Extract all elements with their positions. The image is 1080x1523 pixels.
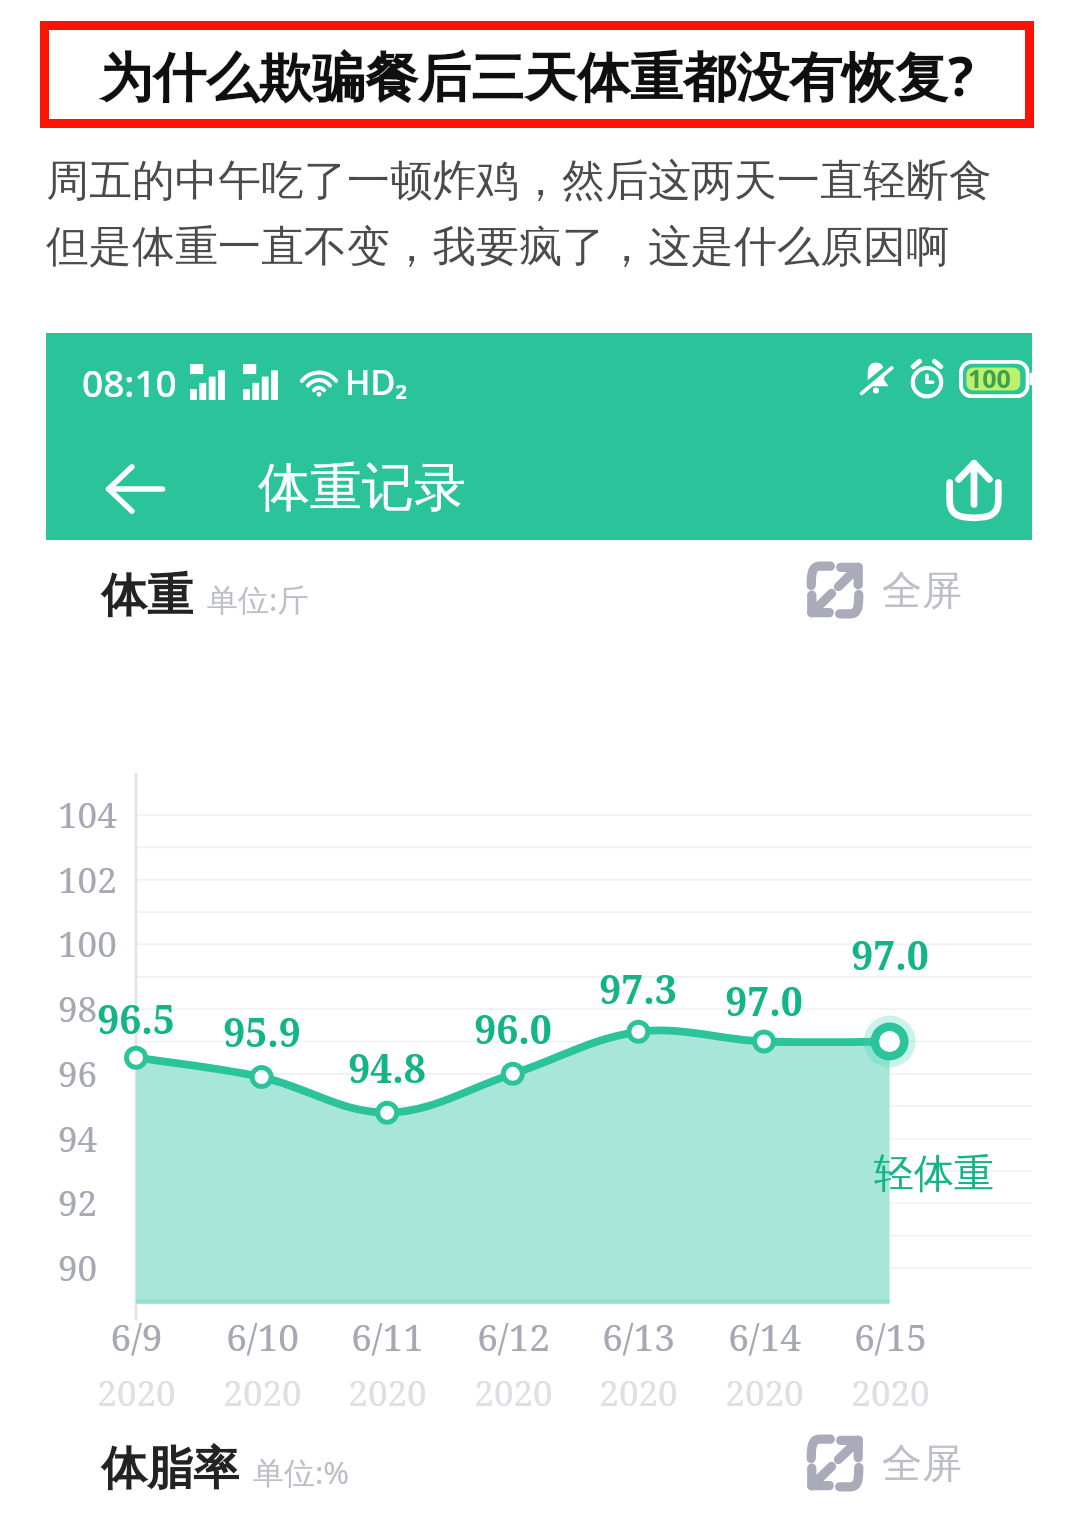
staticText: 100 <box>968 361 1011 395</box>
staticText: 96.0 <box>474 1002 552 1055</box>
staticText: 97.0 <box>851 928 929 981</box>
other: Fullscreen <box>806 561 864 619</box>
staticText: HD₂ <box>345 359 408 405</box>
staticText: 周五的中午吃了一顿炸鸡，然后这两天一直轻断食 <box>46 154 992 208</box>
staticText: 为什么欺骗餐后三天体重都没有恢复? <box>100 39 974 111</box>
staticText: 6/13 <box>602 1311 675 1361</box>
staticText: 6/9 <box>110 1311 163 1361</box>
staticText: 2020 <box>474 1369 553 1417</box>
staticText: 96.5 <box>97 992 175 1045</box>
other: Fullscreen <box>806 1434 864 1492</box>
staticText: 体脂率 <box>101 1440 239 1498</box>
staticText: 96 <box>58 1050 98 1098</box>
staticText: 2020 <box>97 1369 176 1417</box>
staticText: 单位:斤 <box>207 578 309 620</box>
staticText: 95.9 <box>223 1005 301 1058</box>
staticText: 体重 <box>101 567 193 625</box>
staticText: 2020 <box>348 1369 427 1417</box>
button[interactable]: Fullscreen <box>806 1434 962 1492</box>
staticText: 92 <box>58 1179 98 1227</box>
staticText: 98 <box>58 985 98 1033</box>
staticText: 6/15 <box>854 1311 927 1361</box>
button[interactable]: Share <box>932 447 1016 531</box>
staticText: 体重记录 <box>258 455 466 521</box>
staticText: 94.8 <box>348 1041 426 1094</box>
staticText: 6/12 <box>477 1311 550 1361</box>
staticText: 08:10 <box>82 357 177 407</box>
staticText: 90 <box>58 1244 98 1292</box>
staticText: 6/11 <box>351 1311 424 1361</box>
button[interactable]: Fullscreen <box>806 561 962 619</box>
other: Silent <box>858 359 894 399</box>
staticText: 94 <box>58 1115 98 1163</box>
staticText: 2020 <box>851 1369 930 1417</box>
staticText: 2020 <box>725 1369 804 1417</box>
staticText: 104 <box>58 791 117 839</box>
staticText: 2020 <box>599 1369 678 1417</box>
staticText: 102 <box>58 856 117 904</box>
staticText: 但是体重一直不变，我要疯了，这是什么原因啊 <box>46 220 949 274</box>
staticText: 全屏 <box>882 565 962 615</box>
other: Alarm <box>907 359 947 399</box>
staticText: 2020 <box>223 1369 302 1417</box>
staticText: 97.3 <box>599 962 677 1015</box>
staticText: 全屏 <box>882 1438 962 1488</box>
staticText: 6/14 <box>728 1311 801 1361</box>
staticText: 6/10 <box>226 1311 299 1361</box>
button[interactable]: Back <box>94 448 176 530</box>
staticText: 单位:% <box>253 1451 350 1493</box>
staticText: 100 <box>58 920 117 968</box>
staticText: 97.0 <box>725 974 803 1027</box>
staticText: 轻体重 <box>874 1148 994 1198</box>
